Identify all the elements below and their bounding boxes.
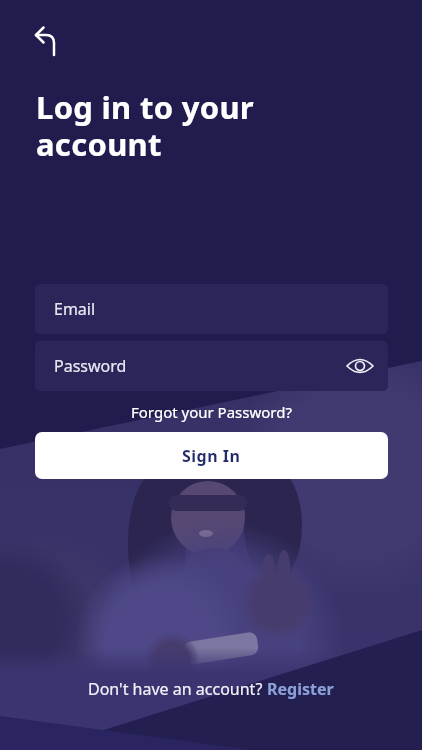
staticText: Sign In	[182, 445, 241, 467]
staticText: Password	[54, 355, 127, 377]
button[interactable]: Forgot your Password?	[131, 402, 292, 422]
button[interactable]: Sign In	[35, 432, 388, 479]
button[interactable]: Register	[267, 678, 334, 700]
button[interactable]: Password	[35, 341, 388, 391]
staticText: Don't have an account?	[88, 678, 267, 700]
button[interactable]: Email	[35, 284, 388, 334]
staticText: Log in to your account	[36, 86, 255, 166]
button[interactable]	[344, 350, 376, 382]
button[interactable]	[24, 20, 66, 62]
staticText: Email	[54, 298, 96, 320]
